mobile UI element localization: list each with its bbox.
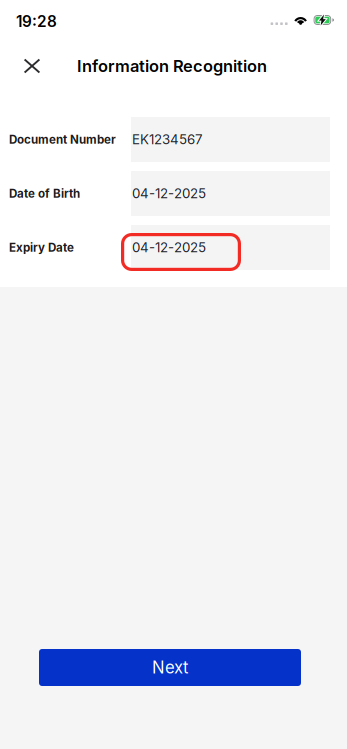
- staticText: Information Recognition: [77, 56, 267, 76]
- staticText: 04-12-2025: [132, 239, 206, 255]
- staticText: Next: [152, 657, 188, 678]
- button[interactable]: Close: [10, 48, 54, 84]
- staticText: 04-12-2025: [132, 185, 206, 201]
- button[interactable]: Next: [39, 649, 301, 686]
- staticText: EK1234567: [132, 131, 203, 147]
- staticText: 19:28: [16, 12, 57, 31]
- staticText: Document Number: [9, 132, 116, 146]
- staticText: Date of Birth: [9, 186, 80, 200]
- staticText: Expiry Date: [9, 240, 74, 254]
